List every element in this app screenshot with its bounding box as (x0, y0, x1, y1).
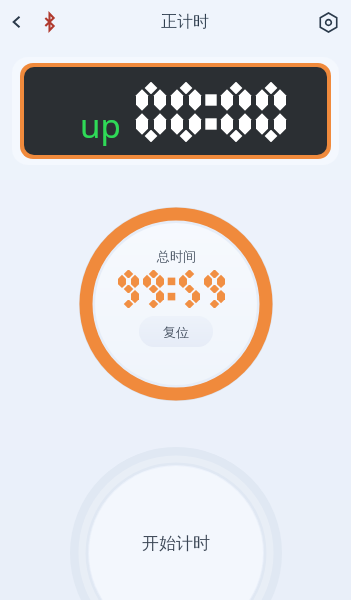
button[interactable]: 复位 (139, 316, 213, 347)
button[interactable]: Bluetooth (34, 0, 64, 44)
button[interactable]: Stopwatch display (24, 67, 327, 155)
button[interactable]: Back (0, 0, 34, 44)
staticText: 开始计时 (142, 533, 210, 554)
button[interactable]: Total time dial (78, 206, 274, 402)
staticText: up (80, 103, 121, 148)
staticText: 复位 (163, 324, 189, 340)
staticText: 正计时 (161, 12, 209, 32)
button[interactable]: Start timing (70, 447, 282, 600)
button[interactable]: Settings (305, 0, 351, 44)
staticText: 总时间 (157, 248, 196, 264)
